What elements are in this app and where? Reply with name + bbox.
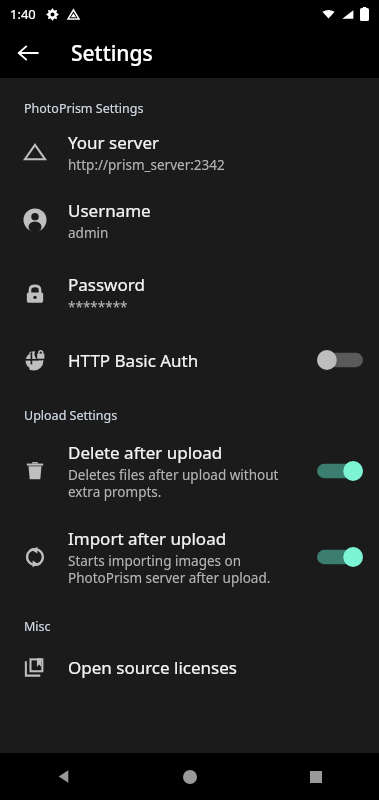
staticText: 1:40 — [10, 5, 36, 23]
button[interactable]: Back — [0, 753, 127, 800]
staticText: Open source licenses — [68, 656, 237, 679]
staticText: Password — [68, 273, 145, 296]
button[interactable]: Toggle off — [317, 345, 363, 375]
staticText: Misc — [24, 618, 51, 635]
staticText: Your server — [68, 131, 160, 154]
staticText: Username — [68, 199, 151, 222]
button[interactable]: Delete after upload — [0, 428, 379, 514]
button[interactable]: Password — [0, 257, 379, 331]
staticText: PhotoPrism Settings — [24, 100, 144, 117]
staticText: admin — [68, 224, 109, 242]
button[interactable]: Toggle on — [317, 542, 363, 572]
staticText: HTTP Basic Auth — [68, 349, 199, 372]
staticText: Upload Settings — [24, 407, 118, 424]
staticText: Import after upload — [68, 527, 227, 550]
button[interactable]: Home — [127, 753, 253, 800]
staticText: Delete after upload — [68, 441, 223, 464]
staticText: Starts importing images on PhotoPrism se… — [68, 552, 271, 587]
staticText: http://prism_server:2342 — [68, 156, 225, 174]
button[interactable]: Open source licenses — [0, 639, 379, 695]
button[interactable]: Import after upload — [0, 514, 379, 600]
staticText: ******** — [68, 298, 128, 316]
button[interactable]: Recent apps — [253, 753, 379, 800]
button[interactable]: Your server — [0, 121, 379, 183]
button[interactable]: Username — [0, 183, 379, 257]
button[interactable]: Back — [9, 34, 47, 72]
staticText: Deletes files after upload without extra… — [68, 466, 279, 501]
button[interactable]: Toggle on — [317, 456, 363, 486]
button[interactable]: HTTP Basic Auth — [0, 331, 379, 389]
staticText: Settings — [71, 39, 153, 68]
